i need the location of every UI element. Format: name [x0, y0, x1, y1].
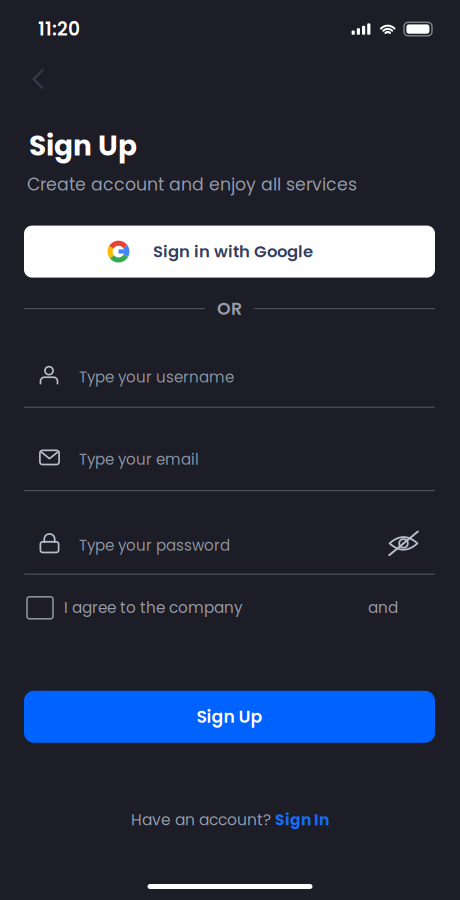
- staticText: Sign In: [275, 809, 329, 831]
- staticText: and: [368, 597, 398, 618]
- staticText: Sign Up: [29, 126, 137, 165]
- staticText: Sign Up: [196, 705, 262, 729]
- button[interactable]: Back: [16, 64, 60, 94]
- staticText: Have an account?: [131, 809, 275, 831]
- staticText: Type your email: [79, 449, 199, 470]
- button[interactable]: Sign In: [275, 809, 329, 831]
- button[interactable]: Sign in with Google: [24, 226, 435, 278]
- staticText: Type your password: [79, 535, 230, 556]
- staticText: 11:20: [38, 16, 80, 42]
- staticText: I agree to the company: [64, 597, 243, 618]
- button[interactable]: I agree to the company terms: [27, 597, 53, 619]
- staticText: Create account and enjoy all services: [27, 172, 357, 197]
- staticText: OR: [217, 296, 242, 321]
- staticText: Type your username: [79, 367, 234, 388]
- staticText: Sign in with Google: [153, 240, 313, 263]
- button[interactable]: Show password: [388, 530, 419, 557]
- button[interactable]: Sign Up: [24, 691, 435, 743]
